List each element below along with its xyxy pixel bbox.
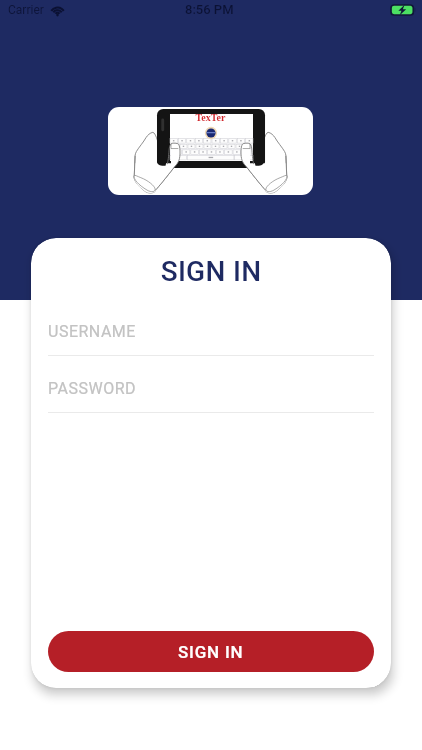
staticText: USERNAME (48, 322, 136, 341)
staticText: PASSWORD (48, 379, 137, 398)
button[interactable]: USERNAME (48, 322, 374, 356)
staticText: Carrier (8, 3, 44, 17)
staticText: TexTer (108, 112, 313, 123)
button[interactable]: SIGN IN (48, 631, 374, 672)
button[interactable]: PASSWORD (48, 379, 374, 413)
staticText: 8:56 PM (185, 2, 234, 17)
staticText: SIGN IN (31, 255, 391, 288)
staticText: SIGN IN (178, 642, 244, 662)
